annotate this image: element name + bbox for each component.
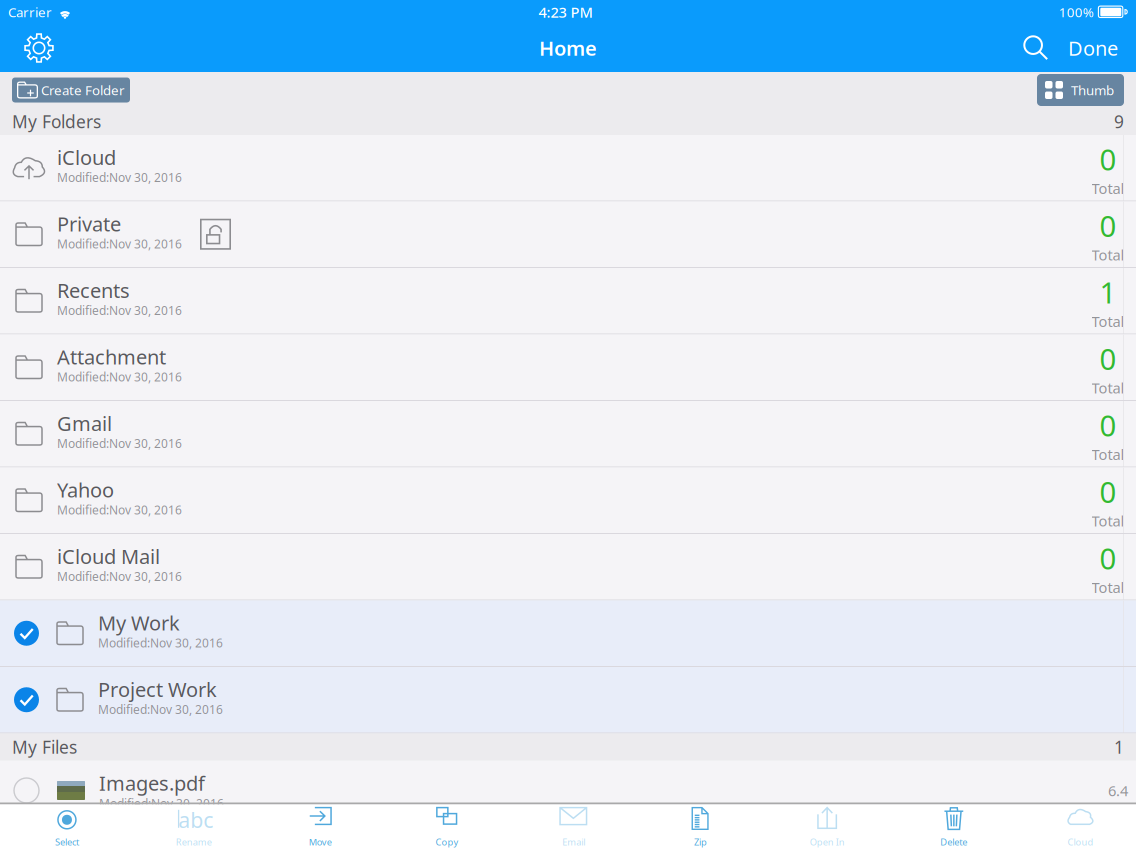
staticText: Modified:Nov 30, 2016 bbox=[99, 795, 224, 811]
staticText: Modified:Nov 30, 2016 bbox=[57, 568, 182, 584]
staticText: Modified:Nov 30, 2016 bbox=[57, 236, 182, 252]
staticText: Open In bbox=[810, 836, 845, 848]
staticText: 100% bbox=[1059, 3, 1094, 21]
staticText: Modified:Nov 30, 2016 bbox=[57, 369, 182, 385]
staticText: iCloud Mail bbox=[57, 543, 160, 569]
staticText: abc bbox=[178, 806, 213, 834]
button[interactable]: My Work bbox=[0, 600, 1136, 667]
staticText: Zip bbox=[694, 836, 707, 848]
staticText: Select bbox=[55, 836, 79, 848]
staticText: Delete bbox=[940, 836, 967, 848]
staticText: Cloud bbox=[1067, 836, 1093, 848]
staticText: Attachment bbox=[57, 343, 166, 370]
staticText: My Files bbox=[12, 735, 77, 758]
staticText: 0 bbox=[1099, 472, 1116, 511]
staticText: Project Work bbox=[98, 676, 217, 702]
staticText: Modified:Nov 30, 2016 bbox=[98, 701, 223, 717]
staticText: Modified:Nov 30, 2016 bbox=[57, 302, 182, 318]
staticText: Total bbox=[1091, 178, 1124, 198]
staticText: 0 bbox=[1099, 538, 1116, 577]
button[interactable]: Search bbox=[1016, 24, 1056, 72]
staticText: Modified:Nov 30, 2016 bbox=[57, 435, 182, 451]
staticText: Rename bbox=[176, 836, 212, 848]
button[interactable]: Yahoo bbox=[0, 467, 1136, 534]
staticText: 6.4 bbox=[1108, 781, 1128, 800]
staticText: Images.pdf bbox=[99, 770, 205, 796]
staticText: Create Folder bbox=[41, 81, 125, 99]
staticText: Modified:Nov 30, 2016 bbox=[57, 169, 182, 185]
staticText: Total bbox=[1091, 378, 1124, 397]
button[interactable]: Project Work bbox=[0, 667, 1136, 733]
staticText: 0 bbox=[1099, 206, 1116, 245]
button[interactable]: Copy bbox=[384, 804, 510, 852]
button[interactable]: Settings bbox=[15, 24, 63, 72]
button[interactable]: Email bbox=[510, 804, 637, 852]
button[interactable]: Recents bbox=[0, 268, 1136, 334]
staticText: Recents bbox=[57, 277, 130, 303]
button[interactable]: Cloud bbox=[1017, 804, 1136, 852]
staticText: Email bbox=[562, 836, 585, 848]
staticText: Total bbox=[1091, 245, 1124, 264]
staticText: Total bbox=[1091, 511, 1124, 530]
staticText: 1 bbox=[1114, 735, 1124, 758]
staticText: Copy bbox=[435, 836, 458, 848]
button[interactable]: Private bbox=[0, 201, 1136, 268]
staticText: 0 bbox=[1099, 405, 1116, 444]
staticText: Total bbox=[1091, 444, 1124, 464]
button[interactable]: Gmail bbox=[0, 401, 1136, 467]
staticText: Modified:Nov 30, 2016 bbox=[98, 635, 223, 651]
staticText: 1 bbox=[1099, 272, 1116, 311]
button[interactable]: abc bbox=[130, 804, 257, 852]
button[interactable]: iCloud Mail bbox=[0, 534, 1136, 600]
staticText: Total bbox=[1091, 577, 1124, 597]
staticText: My Folders bbox=[12, 110, 101, 133]
button[interactable]: Zip bbox=[637, 804, 764, 852]
staticText: My Work bbox=[98, 609, 180, 636]
staticText: Modified:Nov 30, 2016 bbox=[57, 502, 182, 518]
staticText: Home bbox=[539, 35, 597, 61]
staticText: Carrier bbox=[8, 3, 52, 21]
staticText: Private bbox=[57, 210, 121, 237]
staticText: iCloud bbox=[57, 144, 116, 170]
button[interactable]: Done bbox=[1068, 24, 1118, 72]
staticText: Total bbox=[1091, 311, 1124, 331]
staticText: Done bbox=[1068, 35, 1118, 61]
staticText: Yahoo bbox=[57, 476, 114, 503]
staticText: 4:23 PM bbox=[538, 2, 592, 22]
button[interactable]: Attachment bbox=[0, 334, 1136, 401]
button[interactable]: Thumb bbox=[1037, 74, 1124, 106]
button[interactable]: Select bbox=[4, 804, 130, 852]
staticText: Gmail bbox=[57, 410, 112, 436]
staticText: Thumb bbox=[1071, 81, 1114, 99]
button[interactable]: Open In bbox=[764, 804, 890, 852]
staticText: 9 bbox=[1114, 110, 1124, 133]
button[interactable]: Create Folder bbox=[12, 77, 130, 102]
button[interactable]: Move bbox=[257, 804, 384, 852]
staticText: 0 bbox=[1099, 339, 1116, 378]
staticText: 0 bbox=[1099, 139, 1116, 178]
button[interactable]: Images.pdf bbox=[0, 760, 1136, 802]
staticText: Move bbox=[309, 836, 332, 848]
button[interactable]: iCloud bbox=[0, 135, 1136, 201]
button[interactable]: Delete bbox=[890, 804, 1017, 852]
